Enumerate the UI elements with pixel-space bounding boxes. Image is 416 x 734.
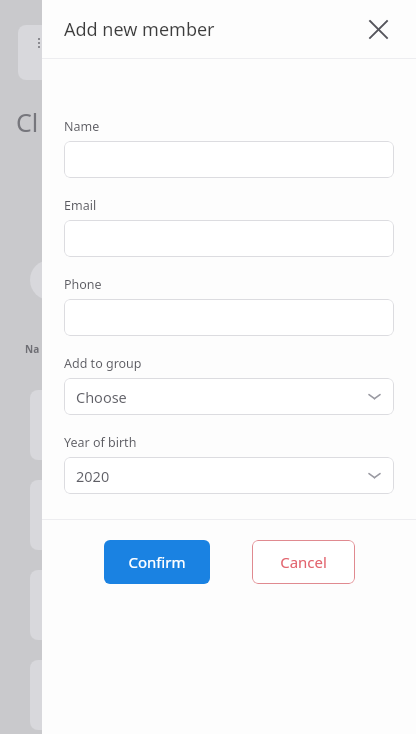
staticText: Year of birth: [64, 434, 137, 451]
button[interactable]: Choose: [64, 378, 394, 415]
button[interactable]: [64, 220, 394, 257]
staticText: Cancel: [280, 552, 327, 572]
button[interactable]: 2020: [64, 457, 394, 494]
button[interactable]: [64, 141, 394, 178]
staticText: Email: [64, 197, 97, 214]
staticText: Add to group: [64, 355, 142, 372]
button[interactable]: Confirm: [104, 540, 210, 584]
staticText: Choose: [76, 387, 127, 407]
staticText: Confirm: [128, 552, 186, 572]
staticText: Cl: [16, 105, 39, 139]
staticText: 2020: [76, 466, 110, 486]
staticText: Na: [25, 342, 40, 356]
staticText: Name: [64, 118, 100, 135]
staticText: Phone: [64, 276, 102, 293]
button[interactable]: Cancel: [252, 540, 355, 584]
staticText: Add new member: [64, 17, 215, 42]
button[interactable]: Close: [360, 11, 396, 47]
button[interactable]: [64, 299, 394, 336]
